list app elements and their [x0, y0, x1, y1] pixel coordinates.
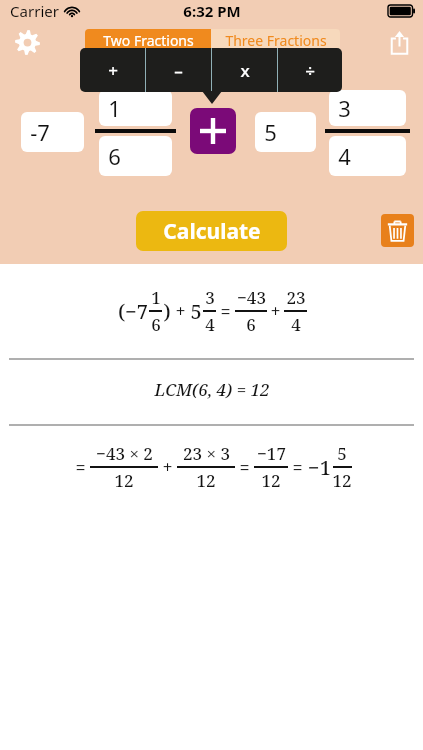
staticText: +	[270, 299, 281, 324]
button[interactable]: Two Fractions	[85, 29, 211, 52]
staticText: )	[163, 298, 171, 325]
staticText: Two Fractions	[103, 31, 194, 50]
staticText: =	[75, 455, 86, 480]
staticText: 12	[196, 469, 216, 492]
staticText: =	[292, 455, 303, 480]
staticText: 4	[291, 313, 301, 336]
staticText: 4	[205, 313, 215, 336]
button[interactable]: -7	[21, 112, 84, 152]
button[interactable]: Calculate	[136, 211, 287, 251]
staticText: 5	[264, 117, 277, 147]
staticText: −43	[237, 286, 266, 309]
button[interactable]: Three Fractions	[211, 29, 340, 52]
button[interactable]: Operator ÷	[278, 48, 342, 92]
button[interactable]: 6	[99, 136, 172, 176]
button[interactable]: Settings	[11, 26, 43, 58]
button[interactable]: Operator +	[80, 48, 145, 92]
button[interactable]: Operator –	[146, 48, 211, 92]
staticText: 12	[332, 469, 352, 492]
staticText: x	[240, 59, 250, 82]
staticText: 6	[151, 313, 161, 336]
staticText: 3	[338, 93, 351, 123]
staticText: –	[174, 59, 183, 82]
staticText: 5	[337, 442, 347, 465]
staticText: 1	[108, 93, 121, 123]
button[interactable]: Operator x	[212, 48, 277, 92]
staticText: 12	[261, 469, 281, 492]
staticText: =	[239, 455, 250, 480]
staticText: -7	[30, 117, 50, 147]
staticText: 4	[338, 141, 351, 171]
staticText: (−7	[118, 298, 148, 325]
staticText: 3	[205, 286, 215, 309]
staticText: +	[162, 455, 173, 480]
staticText: 12	[114, 469, 134, 492]
staticText: +	[108, 59, 118, 82]
staticText: −17	[257, 442, 286, 465]
staticText: 23 × 3	[183, 442, 230, 465]
button[interactable]: 4	[329, 136, 406, 176]
staticText: LCM(6, 4) = 12	[154, 378, 270, 401]
button[interactable]: 3	[329, 90, 406, 126]
staticText: Calculate	[163, 217, 261, 246]
button[interactable]: Plus operator	[190, 108, 236, 154]
staticText: Carrier	[10, 1, 59, 21]
staticText: =	[220, 299, 231, 324]
staticText: Three Fractions	[225, 31, 327, 50]
staticText: −43 × 2	[96, 442, 153, 465]
staticText: 6	[246, 313, 256, 336]
button[interactable]: Share	[383, 26, 415, 58]
button[interactable]: 1	[99, 90, 172, 126]
staticText: ÷	[305, 59, 315, 82]
staticText: 6	[108, 141, 121, 171]
button[interactable]: 5	[255, 112, 316, 152]
staticText: −1	[308, 454, 331, 481]
staticText: 23	[286, 286, 306, 309]
staticText: 6:32 PM	[183, 1, 241, 21]
staticText: 1	[151, 286, 161, 309]
button[interactable]: Clear	[381, 214, 414, 247]
staticText: 5	[190, 298, 202, 325]
staticText: +	[175, 299, 186, 324]
